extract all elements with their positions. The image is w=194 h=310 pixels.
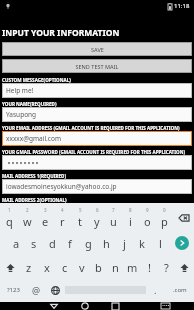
button[interactable]: @ bbox=[27, 279, 46, 301]
staticText: 7 bbox=[112, 207, 115, 213]
button[interactable]: Backspace bbox=[173, 205, 194, 231]
staticText: y bbox=[94, 214, 100, 229]
staticText: d bbox=[49, 236, 56, 251]
staticText: g bbox=[85, 236, 92, 251]
staticText: iowadesmoinesyokkun@yahoo.co.jp bbox=[6, 182, 117, 191]
button[interactable]: a bbox=[8, 231, 25, 255]
button[interactable]: 1 bbox=[0, 205, 18, 231]
staticText: t bbox=[78, 214, 82, 229]
staticText: 4 bbox=[61, 207, 64, 213]
staticText: n bbox=[112, 260, 119, 275]
staticText: k bbox=[139, 236, 145, 251]
staticText: ? bbox=[164, 260, 169, 275]
staticText: . bbox=[154, 284, 157, 296]
staticText: YOUR EMAIL ADDRESS (GMAIL ACCOUNT IS REQ… bbox=[2, 125, 194, 131]
button[interactable]: 2 bbox=[18, 205, 36, 231]
staticText: MAIL ADDRESS 2(OPTIONAL) bbox=[2, 197, 194, 203]
staticText: Help me! bbox=[6, 86, 34, 95]
button[interactable]: Change language bbox=[46, 279, 65, 301]
staticText: 2 bbox=[26, 207, 29, 213]
button[interactable] bbox=[2, 155, 192, 170]
staticText: o bbox=[144, 214, 151, 229]
button[interactable]: .com bbox=[165, 279, 194, 301]
staticText: p bbox=[161, 214, 168, 229]
button[interactable]: h bbox=[97, 231, 115, 255]
staticText: SEND TEST MAIL bbox=[75, 63, 119, 70]
button[interactable]: Shift bbox=[175, 255, 194, 279]
button[interactable]: m bbox=[124, 255, 141, 279]
button[interactable]: 0 bbox=[156, 205, 173, 231]
staticText: 11:18 bbox=[174, 2, 190, 10]
staticText: .com bbox=[173, 286, 187, 294]
staticText: w bbox=[23, 214, 32, 229]
button[interactable]: d bbox=[43, 231, 61, 255]
staticText: 0 bbox=[163, 207, 166, 213]
staticText: 3 bbox=[44, 207, 47, 213]
button[interactable]: b bbox=[90, 255, 107, 279]
staticText: YOUR NAME(REQUIRED) bbox=[2, 101, 194, 107]
button[interactable]: Yasupong bbox=[2, 107, 192, 122]
button[interactable]: 3 bbox=[36, 205, 54, 231]
staticText: 6 bbox=[96, 207, 99, 213]
staticText: i bbox=[129, 214, 132, 229]
button[interactable]: ?123 bbox=[0, 279, 27, 301]
button[interactable]: . bbox=[146, 279, 165, 301]
staticText: a bbox=[13, 236, 20, 251]
button[interactable]: z bbox=[20, 255, 38, 279]
button[interactable]: v bbox=[73, 255, 90, 279]
button[interactable]: 6 bbox=[88, 205, 105, 231]
staticText: CUSTOM MESSAGE(OPTIONAL) bbox=[2, 77, 194, 83]
button[interactable]: Recent apps bbox=[100, 302, 131, 310]
staticText: MAIL ADDRESS 1(REQUIRED) bbox=[2, 173, 194, 179]
staticText: c bbox=[62, 260, 68, 275]
staticText: j bbox=[123, 236, 126, 251]
staticText: @ bbox=[32, 284, 41, 296]
button[interactable]: 5 bbox=[71, 205, 88, 231]
staticText: INPUT YOUR INFORMATION bbox=[2, 27, 120, 39]
button[interactable]: Help me! bbox=[2, 83, 192, 98]
staticText: Yasupong bbox=[6, 110, 37, 119]
staticText: 5 bbox=[79, 207, 82, 213]
button[interactable]: Home bbox=[69, 302, 100, 310]
staticText: v bbox=[79, 260, 85, 275]
button[interactable]: 4 bbox=[54, 205, 71, 231]
staticText: 9 bbox=[146, 207, 149, 213]
button[interactable]: c bbox=[56, 255, 73, 279]
button[interactable]: g bbox=[79, 231, 97, 255]
button[interactable]: x bbox=[38, 255, 56, 279]
staticText: u bbox=[110, 214, 117, 229]
button[interactable]: j bbox=[115, 231, 133, 255]
staticText: q bbox=[6, 214, 13, 229]
button[interactable]: SAVE bbox=[2, 42, 192, 56]
staticText: 8 bbox=[129, 207, 132, 213]
staticText: 1 bbox=[8, 207, 11, 213]
staticText: YOUR GMAIL PASSWORD (GMAIL ACCOUNT IS RE… bbox=[2, 149, 194, 155]
button[interactable]: Enter bbox=[169, 231, 194, 255]
button[interactable]: 9 bbox=[139, 205, 156, 231]
button[interactable]: Back bbox=[38, 302, 69, 310]
button[interactable]: Hide keyboard bbox=[150, 302, 181, 310]
button[interactable]: Shift bbox=[0, 255, 20, 279]
staticText: l bbox=[159, 236, 162, 251]
button[interactable]: iowadesmoinesyokkun@yahoo.co.jp bbox=[2, 179, 192, 194]
staticText: ! bbox=[148, 260, 151, 275]
button[interactable]: 7 bbox=[105, 205, 122, 231]
staticText: f bbox=[68, 236, 72, 251]
button[interactable]: f bbox=[61, 231, 79, 255]
staticText: s bbox=[31, 236, 37, 251]
button[interactable]: 8 bbox=[122, 205, 139, 231]
staticText: x bbox=[44, 260, 50, 275]
button[interactable]: xxxxx@gmail.com bbox=[2, 131, 192, 146]
button[interactable]: SEND TEST MAIL bbox=[2, 59, 192, 73]
staticText: z bbox=[26, 260, 32, 275]
staticText: h bbox=[103, 236, 110, 251]
button[interactable]: n bbox=[107, 255, 124, 279]
button[interactable]: ? bbox=[158, 255, 175, 279]
button[interactable]: k bbox=[133, 231, 151, 255]
staticText: e bbox=[42, 214, 49, 229]
button[interactable]: ! bbox=[141, 255, 158, 279]
button[interactable]: l bbox=[151, 231, 169, 255]
staticText: xxxxx@gmail.com bbox=[6, 134, 61, 143]
button[interactable]: s bbox=[25, 231, 43, 255]
